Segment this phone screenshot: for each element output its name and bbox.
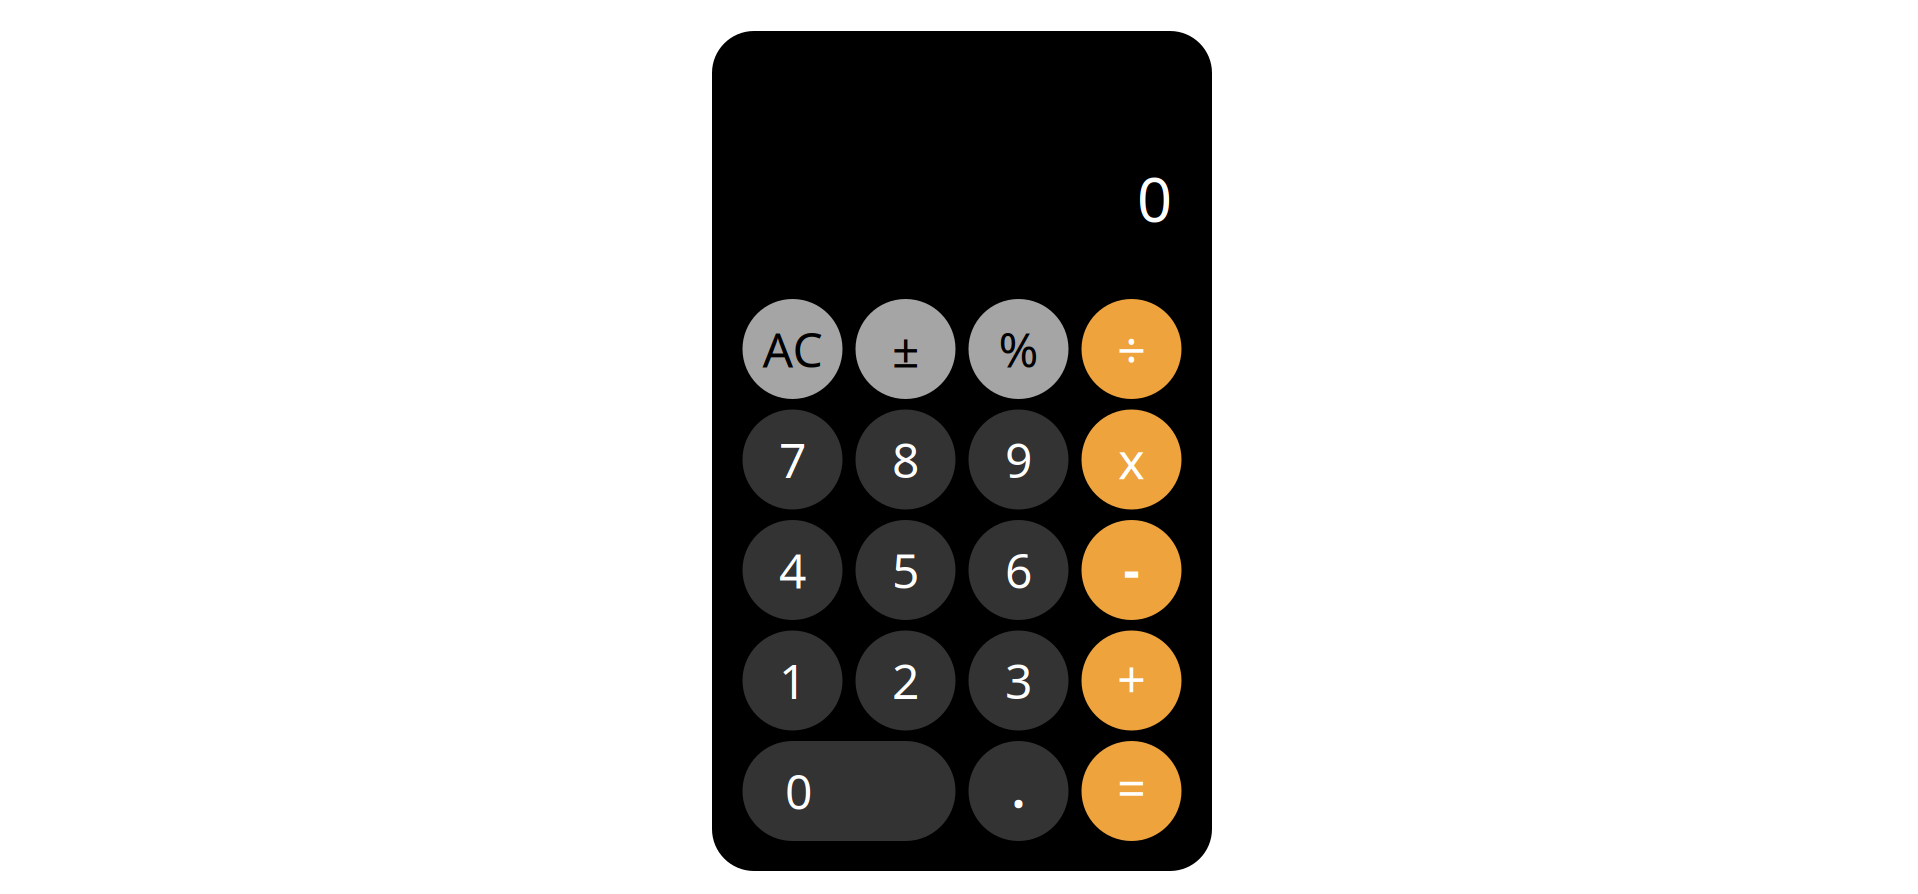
button[interactable]: 3 — [968, 630, 1068, 730]
staticText: 5 — [892, 538, 919, 602]
staticText: 0 — [785, 759, 812, 823]
button[interactable]: Add — [1081, 630, 1181, 730]
button[interactable]: 9 — [968, 409, 1068, 509]
staticText: 6 — [1005, 538, 1032, 602]
staticText: 7 — [779, 428, 806, 491]
staticText: AC — [762, 317, 822, 381]
button[interactable]: 0 — [742, 741, 955, 841]
staticText: - — [1123, 534, 1139, 602]
button[interactable]: 1 — [742, 630, 842, 730]
button[interactable]: 6 — [968, 520, 1068, 620]
staticText: ÷ — [1117, 315, 1146, 383]
staticText: 0 — [1137, 158, 1172, 239]
button[interactable]: Divide — [1081, 299, 1181, 399]
button[interactable]: Subtract — [1081, 520, 1181, 620]
button[interactable]: Decimal point — [968, 741, 1068, 841]
button[interactable]: 2 — [855, 630, 955, 730]
button[interactable]: Percent — [968, 299, 1068, 399]
staticText: 2 — [892, 649, 919, 712]
button[interactable]: 5 — [855, 520, 955, 620]
staticText: = — [1117, 753, 1146, 821]
button[interactable]: 8 — [855, 409, 955, 509]
staticText: ± — [892, 317, 919, 381]
button[interactable]: 7 — [742, 409, 842, 509]
button[interactable]: Multiply — [1081, 409, 1181, 509]
staticText: 8 — [892, 428, 919, 491]
staticText: 3 — [1005, 649, 1032, 712]
button[interactable]: 4 — [742, 520, 842, 620]
staticText: % — [998, 317, 1038, 381]
staticText: 4 — [779, 538, 806, 602]
button[interactable]: All clear — [742, 299, 842, 399]
staticText: x — [1118, 426, 1145, 493]
staticText: 9 — [1005, 428, 1032, 491]
button[interactable]: Plus minus — [855, 299, 955, 399]
button[interactable]: Equals — [1081, 741, 1181, 841]
staticText: + — [1117, 645, 1146, 712]
staticText: 1 — [779, 649, 806, 712]
staticText: . — [1010, 746, 1026, 824]
